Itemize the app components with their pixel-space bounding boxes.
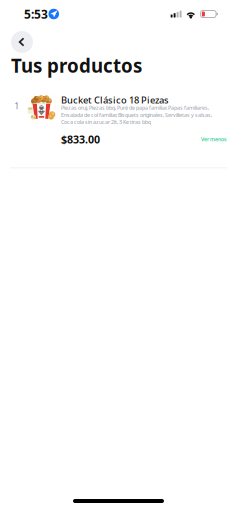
staticText: 1 bbox=[14, 101, 19, 111]
staticText: Bucket Clásico 18 Piezas bbox=[61, 94, 169, 106]
button[interactable]: Ver menos bbox=[199, 135, 229, 144]
staticText: Ver menos bbox=[201, 136, 227, 143]
staticText: Piezas oruj, Piezas bbq, Puré de papa fa… bbox=[61, 104, 212, 125]
staticText: Tus productos bbox=[11, 53, 142, 78]
staticText: 5:53 bbox=[24, 6, 48, 22]
button[interactable]: Back bbox=[11, 31, 33, 53]
staticText: $833.00 bbox=[61, 132, 100, 146]
